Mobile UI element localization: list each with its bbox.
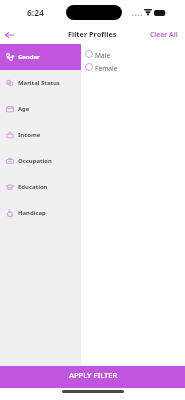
staticText: Handicap bbox=[18, 209, 46, 217]
staticText: Education bbox=[18, 183, 48, 191]
staticText: Age bbox=[18, 105, 30, 113]
button[interactable]: APPLY FILTER bbox=[0, 366, 185, 388]
staticText: 6:24 bbox=[27, 7, 44, 19]
staticText: Filter Profiles bbox=[68, 29, 117, 39]
staticText: Income bbox=[18, 131, 41, 139]
button[interactable]: Education bbox=[0, 174, 81, 200]
button[interactable]: Marital Status bbox=[0, 70, 81, 96]
button[interactable]: Occupation bbox=[0, 148, 81, 174]
staticText: Clear All bbox=[150, 30, 178, 39]
staticText: Occupation bbox=[18, 157, 52, 165]
staticText: Gender bbox=[18, 53, 40, 61]
button[interactable]: Clear All bbox=[142, 27, 185, 42]
button[interactable]: Male bbox=[81, 49, 185, 62]
button[interactable]: Age bbox=[0, 96, 81, 122]
staticText: APPLY FILTER bbox=[69, 370, 118, 380]
staticText: Marital Status bbox=[18, 79, 60, 87]
staticText: Female bbox=[95, 64, 118, 73]
button[interactable]: Income bbox=[0, 122, 81, 148]
button[interactable]: Back bbox=[0, 25, 19, 44]
button[interactable]: Gender bbox=[0, 44, 81, 70]
button[interactable]: Female bbox=[81, 62, 185, 75]
button[interactable]: Handicap bbox=[0, 200, 81, 226]
staticText: Male bbox=[95, 51, 111, 60]
